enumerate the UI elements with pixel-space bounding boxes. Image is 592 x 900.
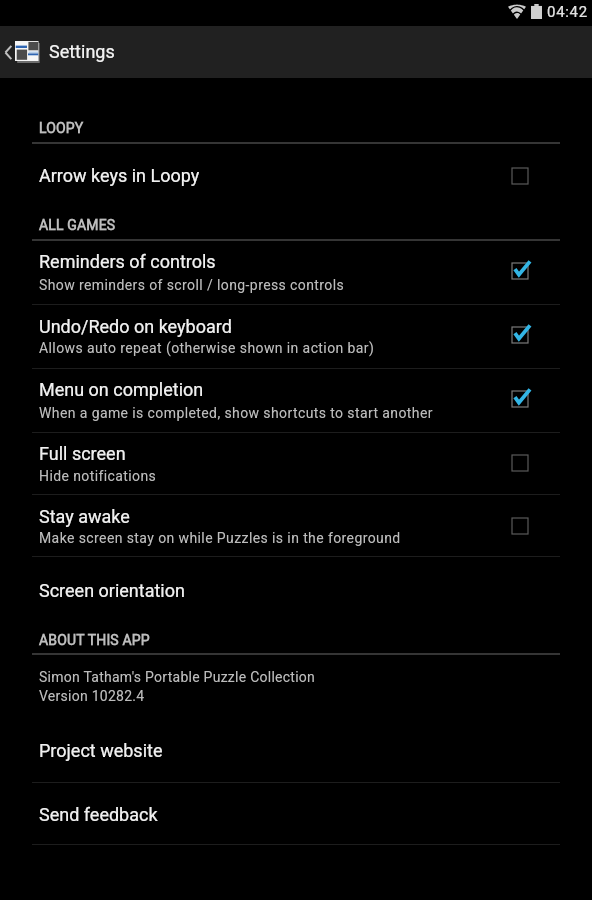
staticText: Simon Tatham's Portable Puzzle Collectio… [39,669,316,685]
staticText: Send feedback [39,804,158,825]
staticText: ALL GAMES [39,217,116,233]
staticText: Reminders of controls [39,251,216,272]
staticText: Settings [49,41,115,62]
staticText: 04:42 [547,3,588,21]
staticText: Version 10282.4 [39,688,145,704]
staticText: Hide notifications [39,468,157,484]
staticText: Stay awake [39,506,130,527]
other: Battery [531,4,542,19]
button[interactable] [0,433,592,494]
button[interactable] [0,783,592,845]
staticText: When a game is completed, show shortcuts… [39,405,433,421]
staticText: Full screen [39,443,126,464]
staticText: Project website [39,740,163,761]
button[interactable] [0,495,592,556]
staticText: Allows auto repeat (otherwise shown in a… [39,340,375,356]
button[interactable] [0,241,592,304]
staticText: Undo/Redo on keyboard [39,316,232,337]
staticText: Show reminders of scroll / long-press co… [39,277,345,293]
staticText: Arrow keys in Loopy [39,165,200,186]
button[interactable] [0,720,592,782]
staticText: Screen orientation [39,580,185,601]
staticText: ABOUT THIS APP [39,632,150,648]
button[interactable] [0,146,592,204]
button[interactable] [0,557,592,619]
staticText: Make screen stay on while Puzzles is in … [39,530,401,546]
button[interactable]: Navigate up [0,26,46,78]
staticText: LOOPY [39,120,84,136]
button[interactable] [0,369,592,432]
staticText: Menu on completion [39,379,204,400]
button[interactable] [0,305,592,368]
other: Wi-Fi [508,4,526,19]
